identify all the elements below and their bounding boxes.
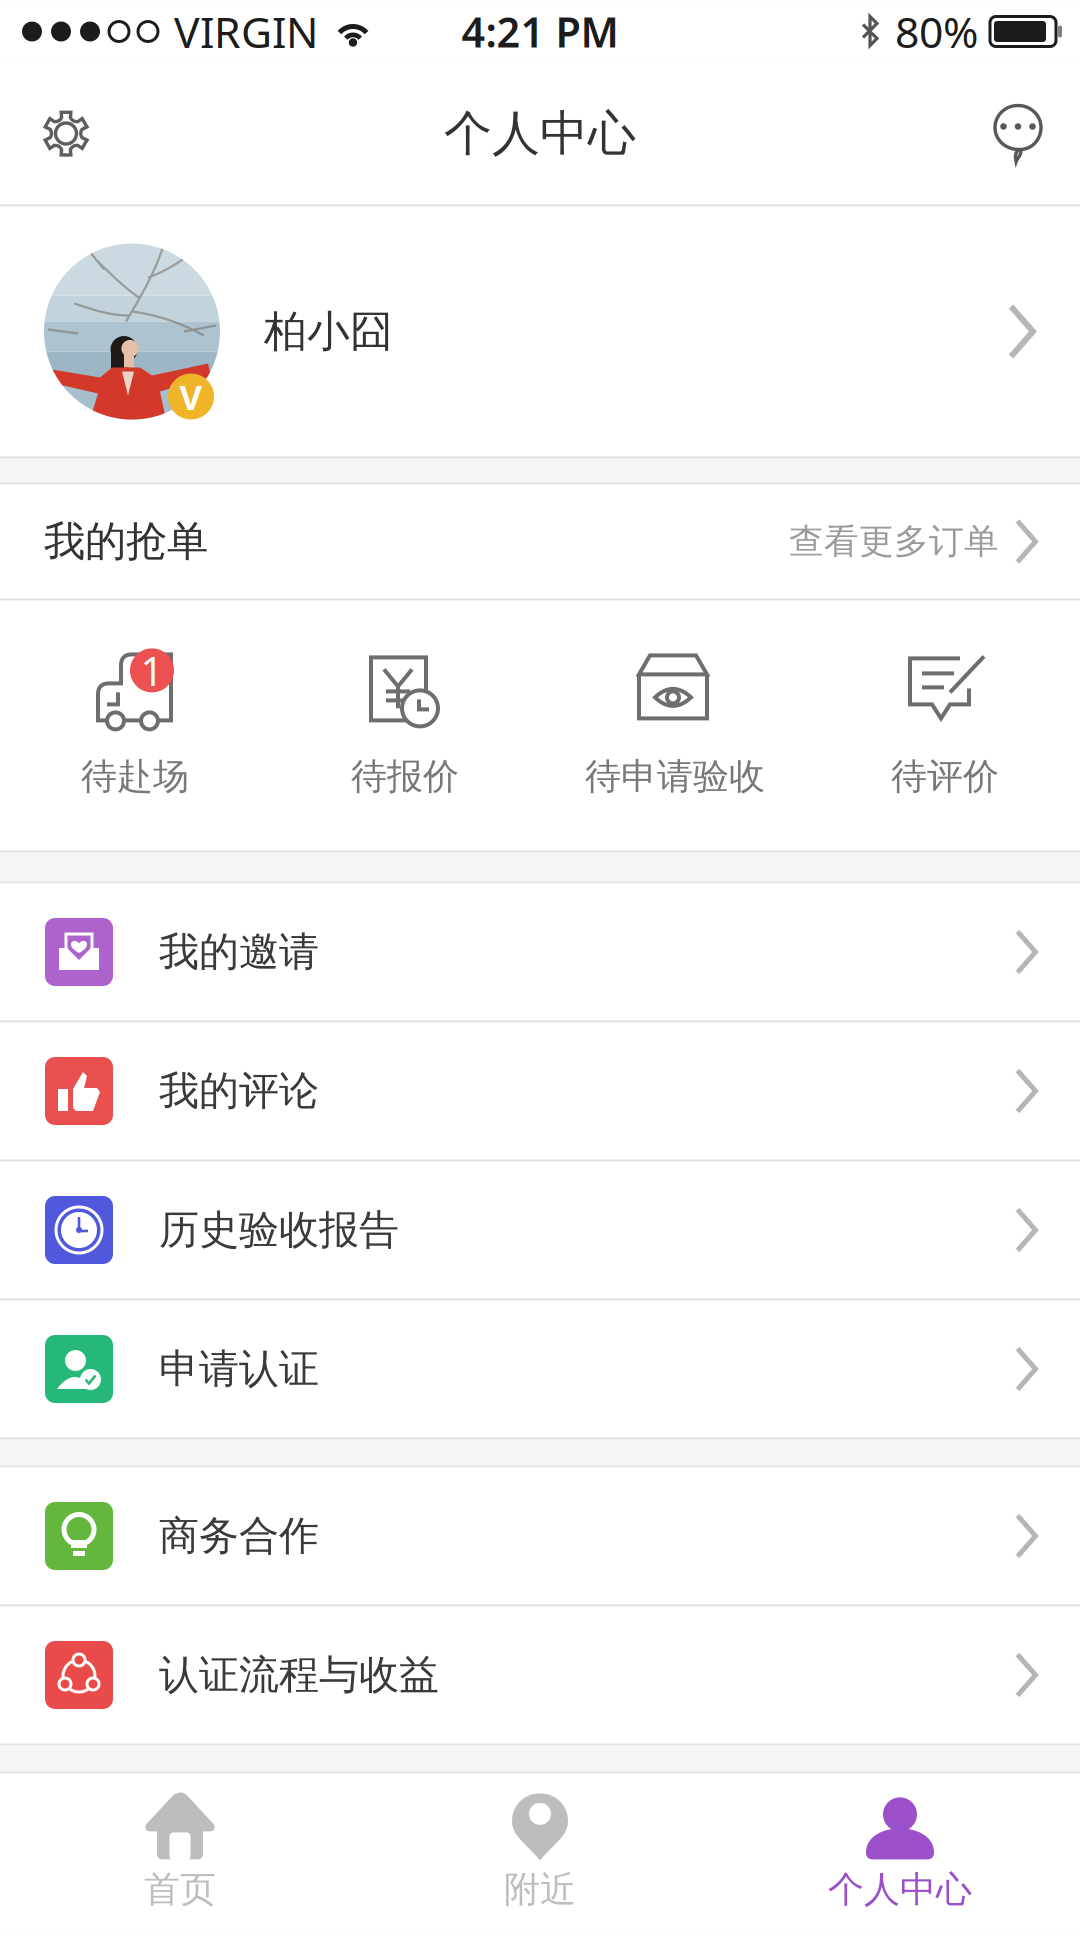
button[interactable]: V bbox=[0, 206, 1080, 456]
staticText: 待赴场 bbox=[81, 754, 189, 799]
button[interactable]: 认证流程与收益 bbox=[0, 1606, 1080, 1743]
button[interactable]: 我的评论 bbox=[0, 1022, 1080, 1159]
button[interactable]: 消息 bbox=[968, 83, 1068, 183]
staticText: V bbox=[179, 373, 202, 419]
staticText: 个人中心 bbox=[828, 1867, 972, 1912]
button[interactable]: 待申请验收 bbox=[540, 600, 810, 850]
staticText: 查看更多订单 bbox=[789, 520, 999, 563]
staticText: 商务合作 bbox=[159, 1511, 319, 1560]
staticText: 认证流程与收益 bbox=[159, 1650, 439, 1699]
button[interactable]: 待评价 bbox=[810, 600, 1080, 850]
staticText: 80% bbox=[895, 3, 978, 60]
button[interactable]: 待报价 bbox=[270, 600, 540, 850]
button[interactable]: 附近 bbox=[360, 1791, 720, 1912]
button[interactable]: 我的邀请 bbox=[0, 883, 1080, 1020]
staticText: 柏小囧 bbox=[264, 305, 393, 358]
button[interactable]: 设置 bbox=[16, 83, 116, 183]
button[interactable]: 历史验收报告 bbox=[0, 1161, 1080, 1298]
staticText: 我的邀请 bbox=[159, 927, 319, 976]
staticText: 首页 bbox=[144, 1867, 216, 1912]
button[interactable]: 我的抢单 bbox=[0, 484, 1080, 598]
staticText: 个人中心 bbox=[444, 104, 636, 163]
staticText: 待申请验收 bbox=[585, 754, 765, 799]
staticText: 我的评论 bbox=[159, 1066, 319, 1115]
staticText: 我的抢单 bbox=[44, 516, 208, 567]
button[interactable]: 1 bbox=[0, 600, 270, 850]
staticText: VIRGIN bbox=[174, 3, 318, 60]
staticText: 4:21 PM bbox=[461, 4, 618, 59]
staticText: 申请认证 bbox=[159, 1344, 319, 1393]
staticText: 历史验收报告 bbox=[159, 1205, 399, 1254]
staticText: 待报价 bbox=[351, 754, 459, 799]
button[interactable]: 商务合作 bbox=[0, 1467, 1080, 1604]
staticText: 待评价 bbox=[891, 754, 999, 799]
button[interactable]: 首页 bbox=[0, 1791, 360, 1912]
staticText: 1 bbox=[140, 644, 163, 697]
button[interactable]: 申请认证 bbox=[0, 1300, 1080, 1437]
staticText: 附近 bbox=[504, 1867, 576, 1912]
button[interactable]: 个人中心 bbox=[720, 1791, 1080, 1912]
